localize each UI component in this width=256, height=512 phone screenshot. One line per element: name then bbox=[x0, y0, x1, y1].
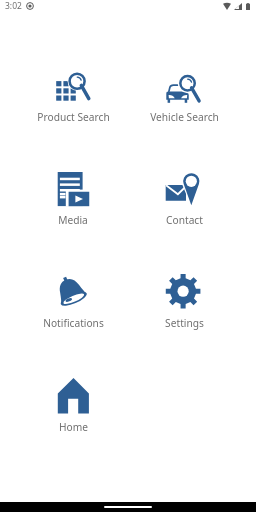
button[interactable]: Home bbox=[23, 378, 123, 434]
staticText: 3:02 bbox=[5, 0, 22, 12]
staticText: Contact bbox=[166, 213, 203, 227]
button[interactable]: Product Search bbox=[23, 68, 123, 124]
button[interactable]: Contact bbox=[134, 171, 234, 227]
button[interactable]: Settings bbox=[134, 274, 234, 330]
staticText: Notifications bbox=[43, 316, 104, 330]
staticText: Product Search bbox=[37, 110, 110, 124]
button[interactable]: Vehicle Search bbox=[134, 68, 234, 124]
staticText: Media bbox=[58, 213, 88, 227]
staticText: Vehicle Search bbox=[150, 110, 219, 124]
button[interactable]: Notifications bbox=[23, 274, 123, 330]
staticText: Settings bbox=[165, 316, 204, 330]
button[interactable]: Media bbox=[23, 171, 123, 227]
staticText: Home bbox=[59, 420, 88, 434]
